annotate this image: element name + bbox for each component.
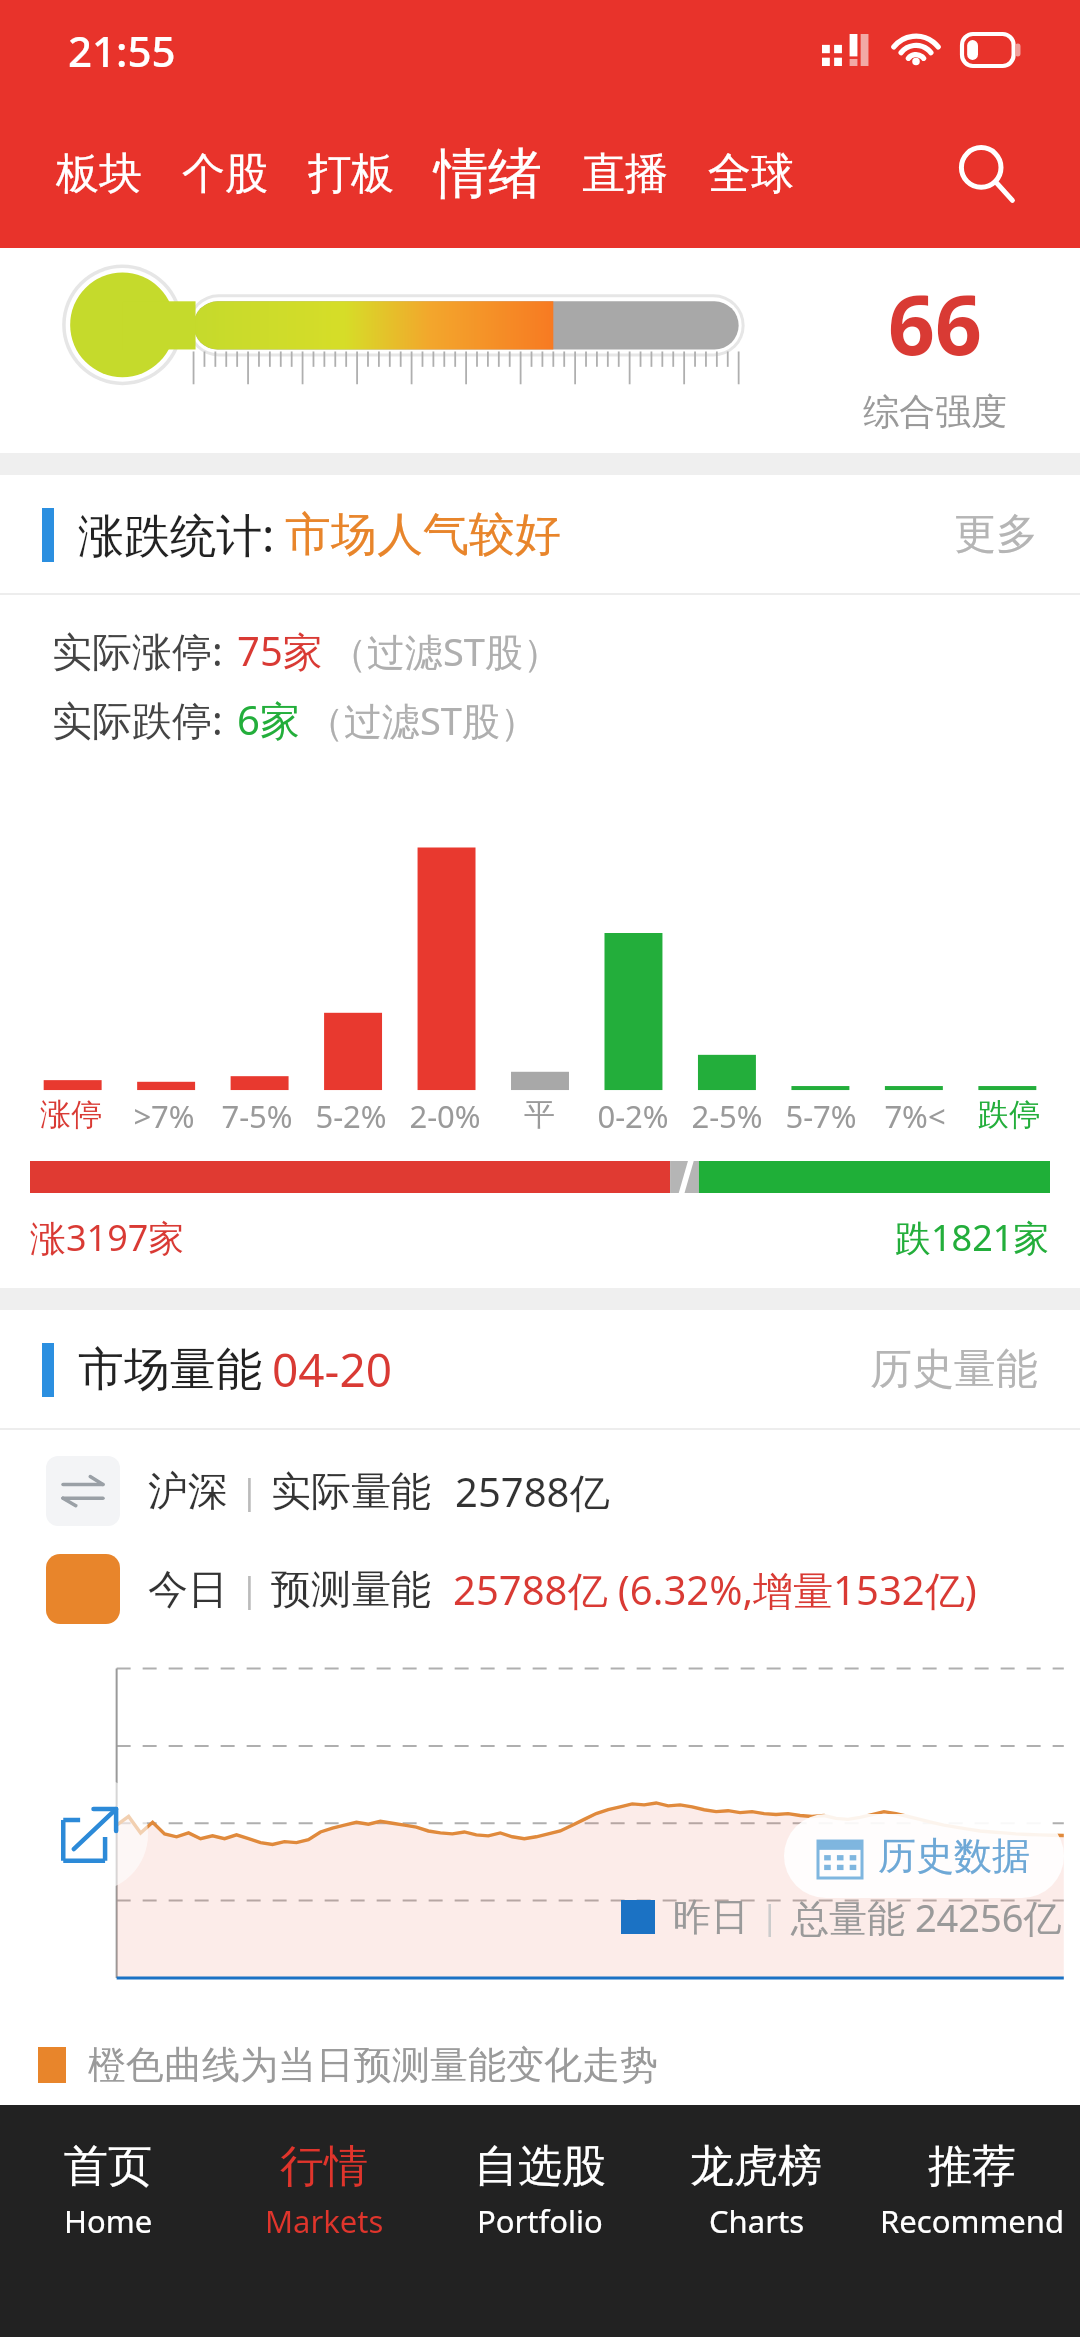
staticText: 21:55 [68,22,176,79]
staticText: 历史量能 [870,1343,1038,1396]
staticText: Portfolio [477,2200,603,2242]
button[interactable]: Search [938,126,1034,222]
button[interactable]: 龙虎榜 [648,2105,864,2337]
staticText: 市场人气较好 [285,506,561,564]
button[interactable]: 历史量能 [828,1327,1080,1412]
button[interactable]: 自选股 [432,2105,648,2337]
staticText: 预测量能 [271,1564,431,1614]
staticText: 打板 [308,147,394,201]
button[interactable]: 更多 [912,492,1080,577]
staticText: Markets [265,2200,384,2242]
button[interactable]: 情绪 [414,130,562,218]
staticText: 龙虎榜 [690,2139,822,2194]
staticText: >7% [133,1095,195,1137]
button[interactable]: 个股 [162,137,288,211]
staticText: 平 [524,1095,555,1134]
staticText: 市场量能 [78,1341,262,1399]
staticText: 板块 [56,147,142,201]
staticText: 涨跌统计: [78,503,275,566]
staticText: 历史数据 [878,1832,1030,1880]
staticText: 直播 [582,147,668,201]
staticText: 跌1821家 [895,1213,1050,1262]
staticText: 04-20 [272,1338,393,1401]
staticText: | [761,1895,779,1939]
staticText: 25788亿 (6.32%,增量1532亿) [453,1562,977,1617]
staticText: 实际涨停: [52,623,223,678]
button[interactable]: Share [32,1776,148,1892]
staticText: 6家 [237,692,300,747]
staticText: | [240,1566,259,1612]
button[interactable]: 打板 [288,137,414,211]
staticText: 全球 [708,147,794,201]
staticText: 行情 [280,2139,368,2194]
staticText: 个股 [182,147,268,201]
staticText: 涨3197家 [30,1213,185,1262]
staticText: 首页 [64,2139,152,2194]
button[interactable]: 全球 [688,137,814,211]
staticText: 0-2% [597,1095,669,1137]
staticText: Charts [709,2200,804,2242]
staticText: 2-5% [691,1095,763,1137]
staticText: Recommend [880,2200,1065,2242]
staticText: 7%< [884,1095,946,1137]
button[interactable]: 推荐 [864,2105,1080,2337]
staticText: 涨停 [40,1095,102,1134]
staticText: Home [64,2200,153,2242]
staticText: 7-5% [221,1095,293,1137]
staticText: 橙色曲线为当日预测量能变化走势 [88,2041,658,2089]
staticText: 跌停 [978,1095,1040,1134]
staticText: 66 [888,267,982,379]
staticText: 自选股 [474,2139,606,2194]
staticText: 实际量能 [271,1466,431,1516]
staticText: | [240,1468,259,1514]
staticText: 沪深 [148,1466,228,1516]
staticText: 情绪 [434,140,542,208]
staticText: 25788亿 [455,1464,610,1519]
staticText: （过滤ST股） [306,694,538,746]
staticText: 今日 [148,1564,228,1614]
staticText: 75家 [237,623,323,678]
staticText: 总量能 24256亿 [791,1891,1062,1943]
button[interactable]: 板块 [36,137,162,211]
staticText: （过滤ST股） [329,625,561,677]
button[interactable]: 行情 [216,2105,432,2337]
staticText: 2-0% [409,1095,481,1137]
staticText: 推荐 [928,2139,1016,2194]
staticText: 实际跌停: [52,692,223,747]
button[interactable]: 直播 [562,137,688,211]
staticText: 更多 [954,508,1038,561]
staticText: 5-2% [315,1095,387,1137]
button[interactable]: 首页 [0,2105,216,2337]
staticText: 5-7% [785,1095,857,1137]
staticText: 综合强度 [863,389,1007,434]
staticText: 昨日 [673,1893,749,1941]
button[interactable]: 历史数据 [784,1814,1064,1898]
